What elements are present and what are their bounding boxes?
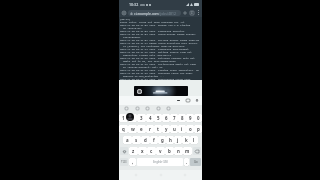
button[interactable]: t (154, 125, 162, 133)
staticText: repository cloned into /builds/ci (120, 53, 172, 56)
staticText: 2024-11-20 10:31:03 INFO Preparing execu… (120, 29, 185, 32)
staticText: 3 (140, 115, 143, 121)
staticText: 5 (157, 115, 160, 121)
staticText: 2024-11-20 10:31:52 INFO added 1284 pack… (120, 98, 197, 101)
button[interactable]: , (129, 158, 136, 166)
button[interactable]: 6 (162, 114, 170, 122)
button[interactable]: New tab (181, 8, 188, 17)
button[interactable]: g (158, 136, 166, 144)
button[interactable]: 0 (194, 114, 202, 122)
button[interactable]: Hide keyboard (185, 98, 190, 103)
button[interactable]: j (174, 136, 182, 144)
button[interactable]: c (147, 147, 156, 155)
staticText: 2024-11-20 10:31:22 INFO Checking cache … (120, 71, 194, 74)
button[interactable]: x (138, 147, 147, 155)
button[interactable]: e (137, 125, 146, 133)
button[interactable]: z (129, 147, 138, 155)
button[interactable]: p (194, 125, 202, 133)
staticText: 2024-11-20 10:31:24 INFO Downloading cac… (120, 77, 191, 80)
button[interactable]: s (132, 136, 141, 144)
staticText: b (168, 148, 171, 154)
staticText: depth set to 20, ref refs/heads/main (120, 59, 176, 62)
button[interactable]: m (183, 147, 192, 155)
staticText: q (122, 126, 125, 132)
staticText: 2024-11-20 10:31:31 INFO $ npm ci --pref… (120, 92, 195, 95)
button[interactable]: a (123, 136, 132, 144)
button[interactable]: k (182, 136, 190, 144)
staticText: t (157, 126, 159, 132)
button[interactable]: v (156, 147, 165, 155)
button[interactable]: d (141, 136, 150, 144)
button[interactable]: ci.example.com (128, 10, 181, 16)
button[interactable]: 2 (128, 114, 137, 122)
staticText: npm warn config production Use --omit=de… (120, 95, 183, 98)
staticText: c (150, 148, 153, 154)
button[interactable]: 1 (119, 114, 128, 122)
button[interactable]: Voice input (194, 98, 199, 103)
button[interactable]: b (165, 147, 174, 155)
button[interactable]: . (184, 158, 189, 166)
staticText: e (140, 126, 143, 132)
staticText: h (169, 137, 172, 143)
button[interactable]: Keyboard tool 3 (145, 106, 150, 111)
button[interactable]: u (170, 125, 178, 133)
button[interactable]: Keyboard tool 4 (156, 106, 161, 111)
staticText: 2024-11-20 10:31:11 DEBUG Using effectiv… (120, 41, 198, 44)
button[interactable]: Shift (120, 147, 128, 155)
button[interactable]: English (US) (137, 158, 183, 166)
staticText: 2 (131, 115, 134, 121)
button[interactable]: y (162, 125, 170, 133)
button[interactable]: n (174, 147, 183, 155)
staticText: j (177, 137, 179, 143)
staticText: w (131, 126, 135, 132)
staticText: Go (194, 160, 198, 164)
button[interactable]: More options (195, 8, 201, 17)
staticText: 2024-11-20 10:31:02 INFO Runner v16.4.0 … (120, 23, 191, 26)
button[interactable]: 3 (137, 114, 146, 122)
button[interactable]: q (119, 125, 128, 133)
button[interactable]: 9 (186, 114, 194, 122)
button[interactable]: i (178, 125, 186, 133)
button[interactable]: Switch tabs (188, 8, 195, 17)
staticText: 6 (165, 115, 168, 121)
staticText: $ npm run build (120, 104, 142, 107)
staticText: y (165, 126, 168, 132)
button[interactable]: Autofill (176, 98, 181, 103)
button[interactable]: Symbols (120, 158, 128, 166)
button[interactable] (134, 86, 188, 96)
button[interactable]: 8 (178, 114, 186, 122)
button[interactable]: Keyboard tool 1 (124, 106, 129, 111)
staticText: o (189, 126, 192, 132)
staticText: s (135, 137, 138, 143)
staticText: English (US) (153, 160, 168, 164)
staticText: 2024-11-20 10:31:15 INFO Getting source … (120, 50, 192, 53)
button[interactable]: h (166, 136, 174, 144)
button[interactable]: Go (190, 158, 201, 166)
button[interactable]: Keyboard tool 5 (166, 106, 171, 111)
staticText: d (144, 137, 147, 143)
staticText: 0 (197, 115, 200, 121)
button[interactable]: 7 (170, 114, 178, 122)
button[interactable]: Site information (120, 8, 128, 17)
staticText: 2024-11-20 10:31:04 INFO Using Docker im… (120, 32, 197, 35)
button[interactable]: w (128, 125, 137, 133)
staticText: on "build-03" (120, 26, 142, 29)
staticText: i (181, 126, 183, 132)
staticText: , (132, 159, 134, 165)
button[interactable]: r (146, 125, 154, 133)
button[interactable]: 4 (146, 114, 154, 122)
button[interactable]: l (190, 136, 198, 144)
button[interactable]: 5 (154, 114, 162, 122)
button[interactable]: f (150, 136, 158, 144)
staticText: z (132, 148, 135, 154)
button[interactable]: o (186, 125, 194, 133)
staticText: 4 (149, 115, 152, 121)
button[interactable]: Backspace (193, 147, 201, 155)
staticText: a (126, 137, 129, 143)
button[interactable]: Keyboard tool 2 (135, 106, 140, 111)
staticText: error fatal: could not read Username for… (120, 20, 185, 23)
button[interactable]: Account (126, 113, 134, 121)
